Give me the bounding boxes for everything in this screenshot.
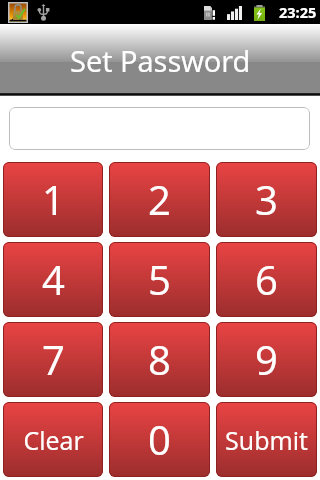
other: Signal strength [227,6,242,20]
button[interactable] [9,107,310,150]
other: Secure notification [8,2,28,23]
staticText: Submit [225,423,308,457]
button[interactable]: 7 [3,322,103,397]
other: Battery charging [254,5,265,21]
staticText: 9 [255,332,278,386]
button[interactable]: 3 [216,162,317,237]
button[interactable]: 6 [216,242,317,317]
button[interactable]: 8 [109,322,210,397]
staticText: 7 [42,332,65,386]
staticText: 3 [255,172,278,226]
other: USB connected [38,4,49,21]
staticText: 1 [42,172,65,226]
staticText: 0 [148,412,171,466]
staticText: 8 [148,332,171,386]
staticText: Set Password [70,41,251,80]
staticText: Clear [23,423,84,457]
button[interactable]: 9 [216,322,317,397]
staticText: 5 [148,252,171,306]
other: Storage warning [204,6,215,20]
button[interactable]: 4 [3,242,103,317]
staticText: 6 [255,252,278,306]
staticText: 2 [148,172,171,226]
staticText: 23:25 [279,3,317,23]
staticText: 4 [42,252,65,306]
button[interactable]: 2 [109,162,210,237]
button[interactable]: Clear [3,402,103,477]
button[interactable]: 0 [109,402,210,477]
button[interactable]: 5 [109,242,210,317]
button[interactable]: 1 [3,162,103,237]
button[interactable]: Submit [216,402,317,477]
